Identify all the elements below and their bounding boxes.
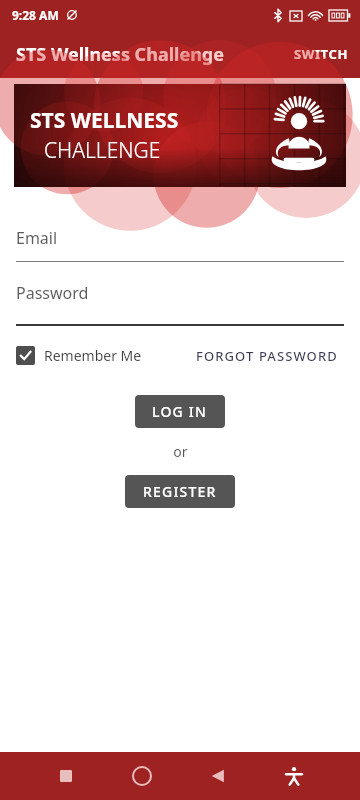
staticText: Password xyxy=(16,282,89,304)
button[interactable]: Email xyxy=(16,215,344,261)
staticText: CHALLENGE xyxy=(44,136,161,165)
staticText: STS WELLNESS xyxy=(30,106,179,135)
button[interactable]: LOG IN xyxy=(135,395,225,428)
button[interactable]: SWITCH xyxy=(282,37,360,71)
button[interactable]: REGISTER xyxy=(125,475,235,508)
staticText: REGISTER xyxy=(143,482,217,501)
button[interactable]: Password xyxy=(16,262,344,324)
button[interactable]: FORGOT PASSWORD xyxy=(190,341,344,371)
staticText: Email xyxy=(16,227,58,249)
button[interactable]: STS WELLNESS xyxy=(14,84,346,187)
staticText: Remember Me xyxy=(44,346,142,365)
button[interactable]: Back xyxy=(196,754,240,798)
staticText: or xyxy=(173,442,188,461)
staticText: SWITCH xyxy=(294,45,348,63)
button[interactable]: Remember Me xyxy=(16,340,142,371)
button[interactable]: Recents xyxy=(44,754,88,798)
staticText: 9:28 AM xyxy=(12,7,59,23)
button[interactable]: Accessibility xyxy=(272,754,316,798)
staticText: LOG IN xyxy=(152,402,208,421)
staticText: STS Wellness Challenge xyxy=(16,42,224,67)
button[interactable]: Home xyxy=(120,754,164,798)
staticText: FORGOT PASSWORD xyxy=(196,347,338,365)
